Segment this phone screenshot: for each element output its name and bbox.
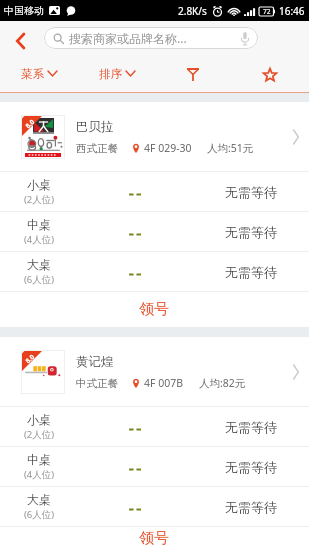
button[interactable]: Favorites: [233, 54, 309, 93]
staticText: 西式正餐: [76, 142, 118, 155]
staticText: 2.8K/s: [178, 4, 207, 18]
staticText: (4人位): [24, 233, 55, 246]
staticText: 人均:51元: [207, 141, 254, 155]
staticText: 搜索商家或品牌名称...: [69, 30, 187, 46]
staticText: 领号: [139, 300, 169, 319]
button[interactable]: 搜索商家或品牌名称...: [44, 27, 258, 49]
button[interactable]: 8.0: [0, 337, 309, 406]
staticText: 8.0: [23, 352, 37, 365]
staticText: 人均:82元: [199, 376, 246, 390]
staticText: 4F 029-30: [144, 141, 192, 155]
staticText: 8.0: [23, 117, 37, 130]
staticText: (6人位): [24, 273, 55, 286]
staticText: 无需等待: [225, 184, 277, 200]
staticText: 中国移动: [4, 4, 44, 17]
staticText: 无需等待: [225, 459, 277, 475]
button[interactable]: 8.0: [0, 102, 309, 171]
staticText: 巴贝拉: [76, 119, 114, 135]
button[interactable]: Filter: [156, 54, 233, 93]
button[interactable]: 菜系: [0, 54, 78, 93]
staticText: 小桌: [27, 412, 51, 427]
staticText: 无需等待: [225, 419, 277, 435]
button[interactable]: 领号: [0, 527, 309, 550]
staticText: 菜系: [21, 67, 44, 81]
staticText: (2人位): [24, 428, 55, 441]
staticText: 16:46: [279, 4, 305, 18]
button[interactable]: 领号: [0, 292, 309, 327]
staticText: 中桌: [27, 452, 51, 467]
staticText: 排序: [99, 67, 122, 81]
staticText: 大桌: [27, 492, 51, 507]
staticText: (4人位): [24, 468, 55, 481]
staticText: 领号: [139, 529, 169, 548]
staticText: (2人位): [24, 193, 55, 206]
staticText: 大桌: [27, 257, 51, 272]
staticText: (6人位): [24, 508, 55, 521]
button[interactable]: Back: [0, 21, 40, 54]
staticText: 无需等待: [225, 264, 277, 280]
staticText: 72: [263, 7, 271, 16]
staticText: 黄记煌: [76, 354, 114, 370]
staticText: 中式正餐: [76, 377, 118, 390]
staticText: 无需等待: [225, 499, 277, 515]
button[interactable]: 排序: [78, 54, 156, 93]
staticText: 中桌: [27, 217, 51, 232]
staticText: 无需等待: [225, 224, 277, 240]
staticText: 小桌: [27, 177, 51, 192]
staticText: 4F 007B: [144, 376, 184, 390]
